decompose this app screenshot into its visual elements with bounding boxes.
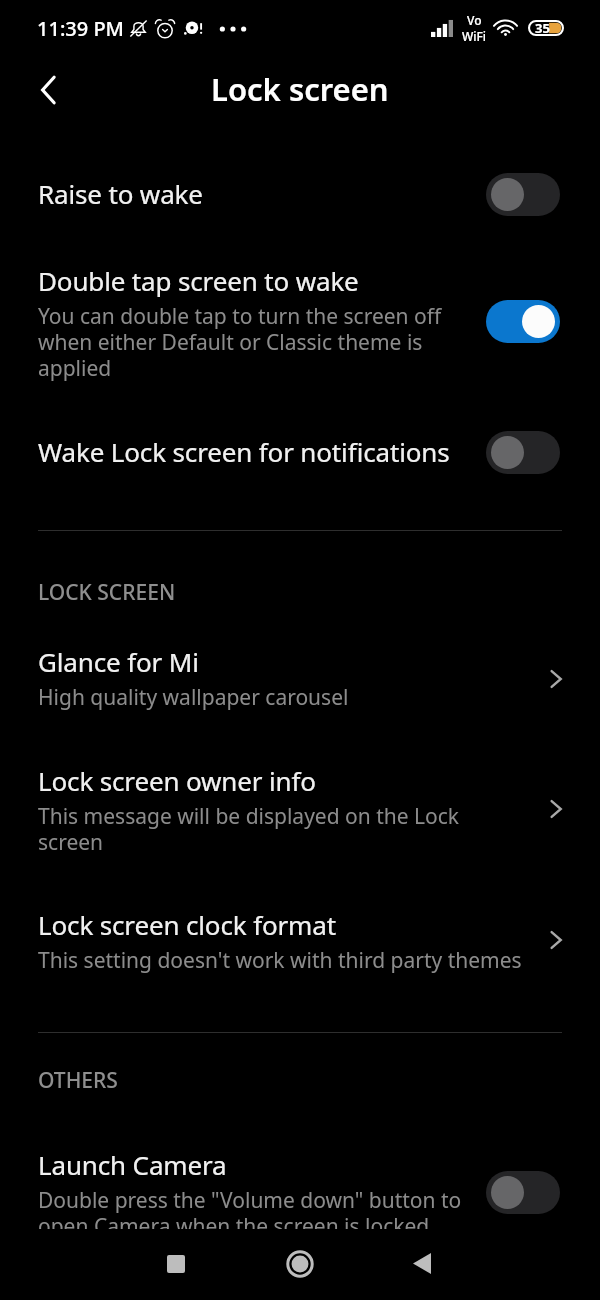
staticText: Lock screen owner info: [38, 763, 316, 798]
button[interactable]: Off: [486, 1171, 560, 1214]
staticText: Lock screen: [211, 68, 389, 110]
button[interactable]: Home: [274, 1229, 326, 1300]
staticText: This message will be displayed on the Lo…: [38, 802, 523, 857]
staticText: Launch Camera: [38, 1147, 227, 1182]
button[interactable]: Wake Lock screen for notifications: [0, 434, 600, 490]
staticText: This setting doesn't work with third par…: [38, 946, 522, 975]
button[interactable]: Lock screen clock format: [0, 907, 600, 999]
staticText: 11:39 PM: [37, 15, 124, 42]
button[interactable]: Off: [486, 173, 560, 216]
button[interactable]: Off: [486, 431, 560, 474]
button[interactable]: Double tap screen to wake: [0, 263, 600, 393]
staticText: Double press the "Volume down" button to…: [38, 1186, 470, 1233]
button[interactable]: Back: [24, 65, 74, 115]
staticText: WiFi: [462, 28, 487, 44]
staticText: Wake Lock screen for notifications: [38, 434, 450, 469]
staticText: Double tap screen to wake: [38, 263, 359, 298]
staticText: Lock screen clock format: [38, 907, 336, 942]
button[interactable]: On: [486, 300, 560, 343]
staticText: You can double tap to turn the screen of…: [38, 302, 470, 383]
staticText: LOCK SCREEN: [38, 578, 176, 607]
button[interactable]: Raise to wake: [0, 176, 600, 232]
button[interactable]: Lock screen owner info: [0, 763, 600, 881]
staticText: Raise to wake: [38, 176, 203, 211]
button[interactable]: Launch Camera: [0, 1147, 600, 1233]
button[interactable]: Back: [396, 1229, 448, 1300]
staticText: OTHERS: [38, 1066, 118, 1095]
staticText: Vo: [467, 12, 482, 28]
button[interactable]: Recent apps: [150, 1229, 202, 1300]
staticText: Glance for Mi: [38, 644, 199, 679]
staticText: High quality wallpaper carousel: [38, 683, 349, 712]
staticText: 35: [535, 19, 550, 35]
button[interactable]: Glance for Mi: [0, 644, 600, 736]
